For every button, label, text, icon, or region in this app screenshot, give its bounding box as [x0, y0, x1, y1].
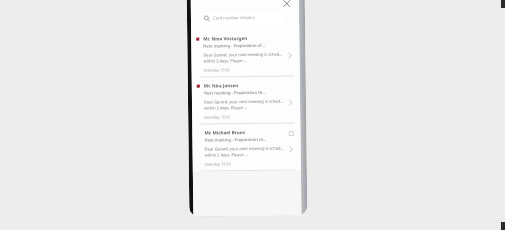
- button[interactable]: Open message: [286, 97, 295, 107]
- button[interactable]: Mr. Michael Bruns: [192, 123, 301, 171]
- staticText: Next meeting - Preparation of...: [203, 43, 265, 50]
- staticText: within 2 days. Please ...: [205, 152, 249, 157]
- other: Power button: [301, 51, 305, 91]
- button[interactable]: Card number enquiry: [199, 11, 285, 25]
- staticText: within 2 days. Please ...: [203, 58, 248, 63]
- button[interactable]: Open message: [285, 50, 294, 60]
- staticText: Next meeting - Preparation ca...: [204, 137, 266, 144]
- button[interactable]: Attachment: [287, 129, 294, 137]
- staticText: Dear Gerard, your next meeting is schedu…: [203, 52, 283, 58]
- staticText: Saturday, 15:32: [205, 161, 231, 166]
- staticText: within 2 days. Please ...: [204, 105, 248, 110]
- button[interactable]: Mr. Nira Jansen: [192, 76, 300, 124]
- staticText: Saturday, 15:32: [204, 114, 230, 119]
- staticText: Dear Gerard, your next meeting is schedu…: [205, 146, 285, 152]
- staticText: Saturday, 15:32: [204, 67, 230, 72]
- staticText: Mr. Nira Jansen: [204, 82, 239, 88]
- staticText: Dear Gerard, your next meeting is schedu…: [204, 99, 284, 105]
- staticText: Card number enquiry: [213, 15, 256, 21]
- button[interactable]: Close search: [281, 0, 293, 10]
- staticText: Mr. Michael Bruns: [204, 129, 245, 136]
- staticText: Next meeting - Preparation th...: [204, 90, 266, 97]
- staticText: Mr. Nina Vosturgen: [203, 35, 247, 41]
- button[interactable]: Open message: [286, 144, 296, 153]
- button[interactable]: Mr. Nina Vosturgen: [191, 29, 300, 77]
